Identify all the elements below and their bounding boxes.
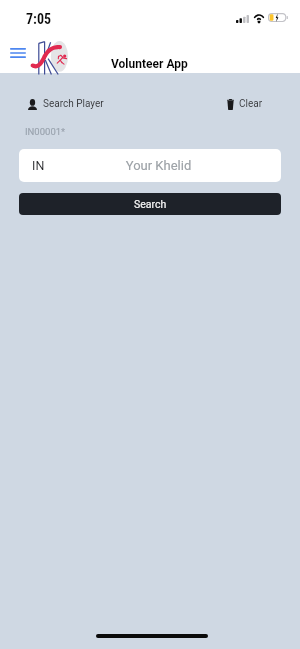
staticText: Volunteer App (111, 57, 188, 71)
button[interactable]: Clear (227, 98, 263, 110)
button[interactable]: Open navigation menu (4, 42, 32, 63)
staticText: IN (32, 158, 45, 173)
staticText: 7:05 (26, 11, 52, 27)
staticText: Your Khelid (45, 158, 272, 173)
button[interactable]: Search (19, 193, 281, 215)
button[interactable]: Search Player (28, 98, 104, 110)
staticText: Search (134, 198, 167, 210)
staticText: Clear (239, 98, 263, 110)
staticText: IN00001* (25, 126, 66, 137)
staticText: Search Player (43, 98, 104, 110)
button[interactable]: IN (19, 149, 281, 182)
